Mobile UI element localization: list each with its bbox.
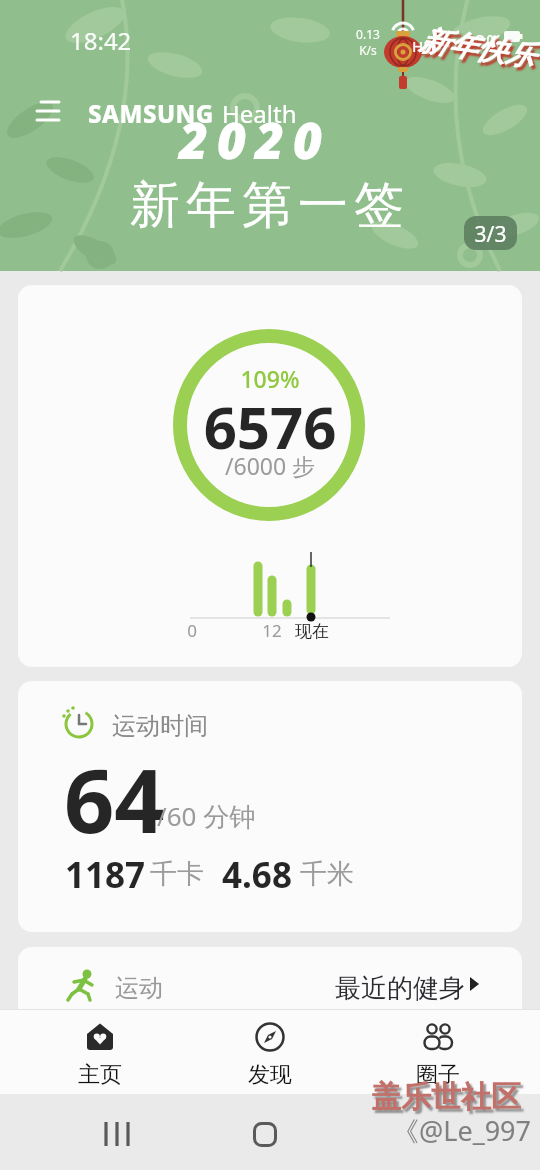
button[interactable] bbox=[104, 1122, 132, 1146]
staticText: 盖乐世社区 bbox=[371, 1078, 521, 1116]
staticText: 99% bbox=[462, 29, 504, 58]
button[interactable]: 圈子 bbox=[388, 1011, 488, 1094]
staticText: /6000 步 bbox=[18, 450, 522, 481]
staticText: 0.13 K/s bbox=[348, 26, 388, 58]
button[interactable]: 109% bbox=[18, 285, 522, 667]
staticText: 64 bbox=[64, 739, 165, 859]
staticText: SAMSUNG bbox=[88, 97, 214, 130]
button[interactable]: 运动时间 bbox=[18, 681, 522, 932]
staticText: 主页 bbox=[50, 1061, 150, 1089]
staticText: 4G bbox=[438, 33, 458, 53]
staticText: 1187 bbox=[65, 851, 146, 899]
staticText: 现在 bbox=[290, 621, 334, 642]
button[interactable] bbox=[36, 100, 60, 122]
staticText: 新年快乐 bbox=[417, 22, 537, 75]
staticText: 6576 bbox=[18, 387, 522, 466]
staticText: 运动 bbox=[115, 973, 163, 1003]
staticText: 3/3 bbox=[464, 220, 517, 249]
staticText: HD bbox=[412, 36, 435, 56]
button[interactable]: 运动 bbox=[18, 947, 522, 1023]
staticText: 千米 bbox=[300, 857, 354, 891]
staticText: 新年第一签 bbox=[0, 174, 540, 237]
staticText: 12 bbox=[262, 619, 282, 642]
button[interactable] bbox=[253, 1122, 277, 1147]
staticText: 运动时间 bbox=[112, 711, 208, 741]
staticText: 109% bbox=[18, 363, 522, 394]
staticText: 《@Le_997 bbox=[392, 1112, 531, 1149]
button[interactable]: 主页 bbox=[50, 1011, 150, 1094]
staticText: Health bbox=[222, 97, 297, 130]
staticText: /60 分钟 bbox=[157, 798, 256, 834]
button[interactable]: 发现 bbox=[220, 1011, 320, 1094]
staticText: 4.68 bbox=[222, 851, 292, 899]
staticText: 18:42 bbox=[70, 24, 132, 57]
staticText: 圈子 bbox=[388, 1061, 488, 1089]
staticText: 0 bbox=[182, 619, 202, 642]
staticText: 2020 bbox=[155, 106, 355, 174]
staticText: 最近的健身 bbox=[335, 972, 465, 1005]
staticText: 千卡 bbox=[150, 857, 204, 891]
staticText: 发现 bbox=[220, 1061, 320, 1089]
